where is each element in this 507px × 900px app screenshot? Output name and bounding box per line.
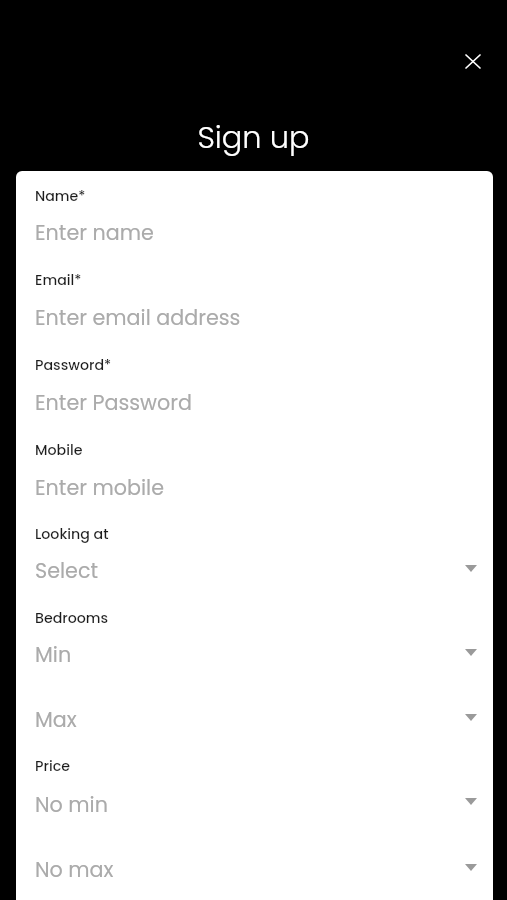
staticText: Enter Password [35,388,192,417]
staticText: Min [35,640,72,669]
button[interactable]: Bedrooms [0,602,507,669]
staticText: Name* [35,186,86,206]
staticText: Max [35,705,77,734]
staticText: Email* [35,270,82,290]
button[interactable]: Looking at [0,518,507,585]
staticText: Enter mobile [35,473,164,502]
staticText: Select [35,556,98,585]
button[interactable]: Mobile [0,434,507,502]
button[interactable]: No max [0,845,507,884]
staticText: No min [35,790,108,819]
button[interactable]: Price [0,750,507,818]
staticText: Sign up [0,116,507,159]
button[interactable]: Password* [0,349,507,417]
button[interactable]: Email* [0,264,507,331]
staticText: Bedrooms [35,608,109,628]
staticText: Looking at [35,524,109,544]
staticText: Price [35,756,70,776]
staticText: No max [35,855,114,884]
button[interactable]: Max [0,695,507,734]
staticText: Enter name [35,218,154,247]
button[interactable]: Name* [0,180,507,247]
button[interactable]: Close [455,43,491,79]
staticText: Password* [35,355,112,375]
staticText: Enter email address [35,303,241,332]
staticText: Mobile [35,440,83,460]
